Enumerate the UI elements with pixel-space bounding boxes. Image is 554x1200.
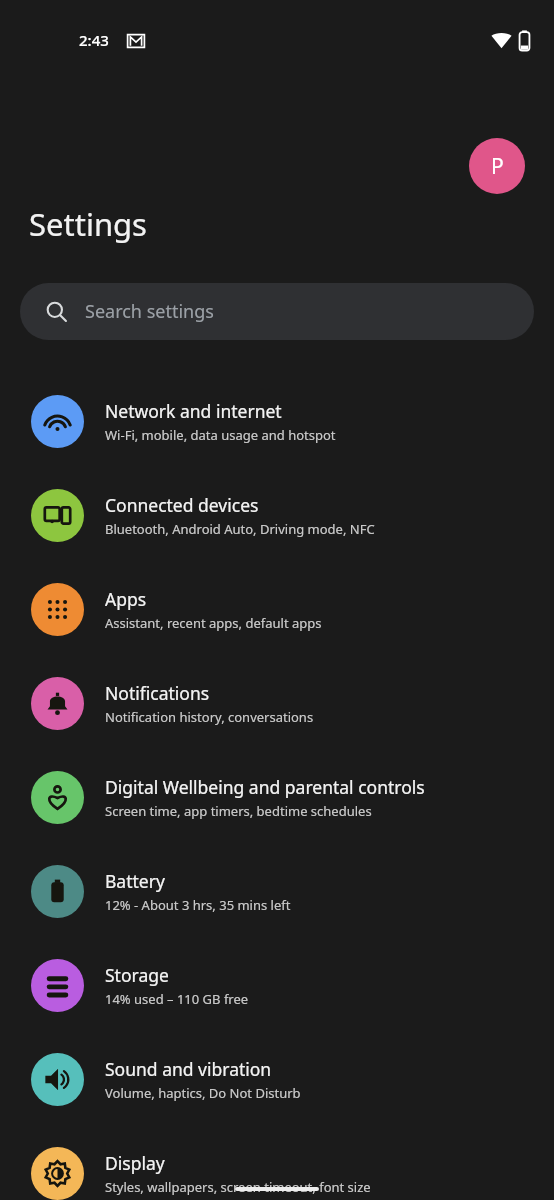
button[interactable]: Connected devices [0, 475, 554, 555]
button[interactable]: Apps [0, 569, 554, 649]
button[interactable]: Notifications [0, 663, 554, 743]
staticText: Screen time, app timers, bedtime schedul… [105, 802, 372, 820]
staticText: Notifications [105, 681, 210, 705]
button[interactable]: Sound and vibration [0, 1039, 554, 1119]
staticText: Assistant, recent apps, default apps [105, 614, 322, 632]
button[interactable]: Network and internet [0, 381, 554, 461]
button[interactable]: Digital Wellbeing and parental controls [0, 757, 554, 837]
staticText: Digital Wellbeing and parental controls [105, 775, 425, 799]
staticText: Volume, haptics, Do Not Disturb [105, 1084, 301, 1102]
staticText: Styles, wallpapers, screen timeout, font… [105, 1178, 371, 1196]
button[interactable]: Storage [0, 945, 554, 1025]
staticText: Wi-Fi, mobile, data usage and hotspot [105, 426, 336, 444]
staticText: Apps [105, 587, 147, 611]
button[interactable]: Display [0, 1133, 554, 1200]
staticText: Bluetooth, Android Auto, Driving mode, N… [105, 520, 375, 538]
staticText: Sound and vibration [105, 1057, 272, 1081]
staticText: P [491, 152, 504, 181]
button[interactable]: Battery [0, 851, 554, 931]
staticText: 14% used – 110 GB free [105, 990, 249, 1008]
staticText: Connected devices [105, 493, 259, 517]
staticText: Network and internet [105, 399, 282, 423]
staticText: Storage [105, 963, 169, 987]
button[interactable]: Account [469, 138, 525, 194]
staticText: 12% - About 3 hrs, 35 mins left [105, 896, 291, 914]
staticText: Search settings [85, 299, 214, 324]
staticText: 2:43 [79, 30, 109, 50]
button[interactable]: Search settings [20, 283, 534, 340]
staticText: Notification history, conversations [105, 708, 314, 726]
staticText: Display [105, 1151, 165, 1175]
staticText: Settings [29, 203, 147, 245]
staticText: Battery [105, 869, 165, 893]
